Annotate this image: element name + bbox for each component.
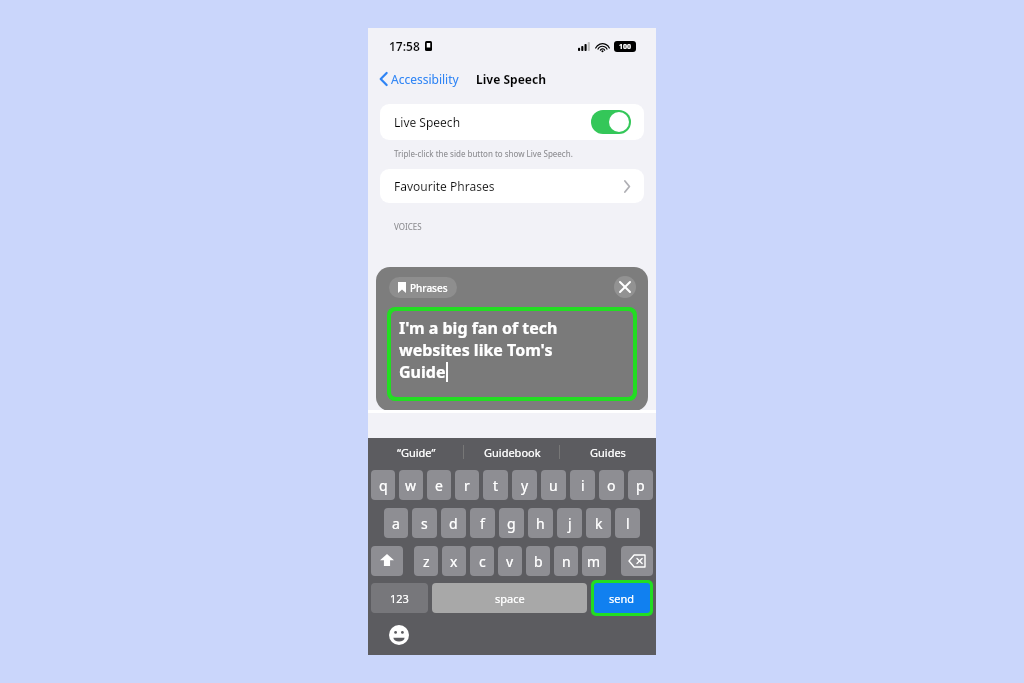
staticText: w bbox=[405, 476, 417, 495]
staticText: Live Speech bbox=[476, 71, 546, 87]
staticText: VOICES bbox=[394, 221, 422, 232]
staticText: space bbox=[495, 591, 525, 606]
button[interactable]: f bbox=[470, 508, 495, 538]
staticText: j bbox=[568, 514, 572, 533]
staticText: a bbox=[392, 514, 400, 533]
staticText: 100 bbox=[619, 42, 632, 52]
staticText: c bbox=[479, 552, 486, 571]
staticText: b bbox=[534, 552, 543, 571]
button[interactable]: space bbox=[432, 583, 587, 613]
staticText: 17:58 bbox=[389, 38, 420, 54]
staticText: I'm a big fan of tech bbox=[399, 317, 558, 339]
staticText: p bbox=[636, 476, 645, 495]
button[interactable]: l bbox=[615, 508, 640, 538]
button[interactable]: 123 bbox=[371, 583, 428, 613]
button[interactable]: Shift bbox=[371, 546, 403, 576]
staticText: u bbox=[549, 476, 558, 495]
button[interactable]: b bbox=[526, 546, 550, 576]
button[interactable]: h bbox=[528, 508, 553, 538]
staticText: Guidebook bbox=[484, 445, 541, 460]
button[interactable]: Favourite Phrases bbox=[380, 169, 644, 203]
staticText: l bbox=[626, 514, 630, 533]
button[interactable]: Guides bbox=[560, 438, 656, 466]
button[interactable]: s bbox=[412, 508, 437, 538]
button[interactable]: I'm a big fan of tech bbox=[391, 311, 633, 397]
button[interactable] bbox=[591, 110, 631, 134]
button[interactable]: “Guide” bbox=[368, 438, 464, 466]
button[interactable]: z bbox=[414, 546, 438, 576]
button[interactable]: y bbox=[512, 470, 537, 500]
button[interactable]: k bbox=[586, 508, 611, 538]
button[interactable]: t bbox=[483, 470, 508, 500]
staticText: Triple-click the side button to show Liv… bbox=[394, 148, 573, 159]
staticText: i bbox=[581, 476, 585, 495]
staticText: t bbox=[493, 476, 499, 495]
button[interactable]: m bbox=[582, 546, 606, 576]
staticText: v bbox=[506, 552, 514, 571]
button[interactable]: e bbox=[427, 470, 451, 500]
button[interactable]: Backspace bbox=[621, 546, 653, 576]
staticText: m bbox=[587, 552, 601, 571]
button[interactable]: g bbox=[499, 508, 524, 538]
button[interactable]: c bbox=[470, 546, 494, 576]
staticText: o bbox=[607, 476, 616, 495]
staticText: Accessibility bbox=[391, 71, 459, 87]
button[interactable]: Phrases bbox=[389, 277, 457, 298]
staticText: send bbox=[609, 591, 635, 606]
staticText: Guides bbox=[590, 445, 626, 460]
button[interactable]: Emoji bbox=[389, 625, 409, 645]
button[interactable]: i bbox=[570, 470, 595, 500]
staticText: d bbox=[449, 514, 458, 533]
button[interactable]: j bbox=[557, 508, 582, 538]
button[interactable]: send bbox=[594, 583, 650, 613]
staticText: Live Speech bbox=[394, 114, 461, 130]
staticText: r bbox=[464, 476, 470, 495]
button[interactable]: o bbox=[599, 470, 624, 500]
staticText: k bbox=[595, 514, 603, 533]
staticText: Favourite Phrases bbox=[394, 178, 495, 194]
button[interactable]: Live Speech bbox=[380, 104, 644, 140]
staticText: “Guide” bbox=[397, 445, 436, 460]
staticText: h bbox=[536, 514, 545, 533]
button[interactable]: v bbox=[498, 546, 522, 576]
button[interactable]: x bbox=[442, 546, 466, 576]
button[interactable]: n bbox=[554, 546, 578, 576]
button[interactable]: a bbox=[384, 508, 408, 538]
button[interactable]: q bbox=[371, 470, 395, 500]
button[interactable]: w bbox=[399, 470, 423, 500]
staticText: s bbox=[421, 514, 428, 533]
staticText: websites like Tom's bbox=[399, 339, 553, 361]
button[interactable]: r bbox=[455, 470, 479, 500]
staticText: x bbox=[450, 552, 458, 571]
staticText: Guide bbox=[399, 361, 446, 383]
staticText: y bbox=[521, 476, 529, 495]
staticText: e bbox=[435, 476, 443, 495]
staticText: q bbox=[379, 476, 388, 495]
staticText: z bbox=[423, 552, 430, 571]
button[interactable]: d bbox=[441, 508, 466, 538]
staticText: Phrases bbox=[410, 281, 448, 295]
staticText: g bbox=[507, 514, 516, 533]
button[interactable]: Close bbox=[614, 276, 636, 298]
staticText: 123 bbox=[390, 591, 409, 606]
staticText: n bbox=[562, 552, 571, 571]
staticText: f bbox=[480, 514, 485, 533]
button[interactable]: p bbox=[628, 470, 653, 500]
button[interactable]: u bbox=[541, 470, 566, 500]
button[interactable]: Guidebook bbox=[464, 438, 560, 466]
button[interactable]: Accessibility bbox=[376, 67, 463, 91]
